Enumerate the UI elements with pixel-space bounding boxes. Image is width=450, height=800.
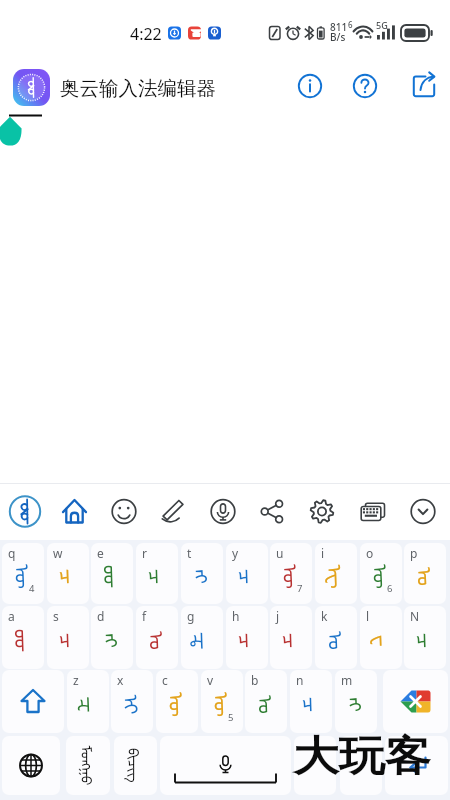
button[interactable]: k (315, 606, 357, 669)
staticText: x (117, 672, 124, 688)
button[interactable]: t (181, 543, 223, 604)
staticText: u (276, 545, 284, 561)
button[interactable]: Collapse (401, 490, 445, 534)
staticText: 4:22 (130, 23, 162, 45)
button[interactable]: u (270, 543, 312, 604)
button[interactable]: Settings (300, 490, 344, 534)
staticText: ᠴ (276, 632, 312, 649)
button[interactable]: Share (410, 72, 438, 100)
staticText: ᠩ (342, 696, 377, 713)
button[interactable]: s (47, 606, 89, 669)
staticText: q (8, 545, 16, 561)
button[interactable]: w (47, 543, 89, 604)
button[interactable]: y (226, 543, 268, 604)
button[interactable]: Space (160, 736, 291, 795)
staticText: ᠴ (142, 568, 178, 585)
button[interactable]: j (270, 606, 312, 669)
button[interactable]: c (156, 670, 198, 733)
staticText: z (73, 672, 79, 688)
button[interactable]: Script (114, 736, 157, 795)
staticText: B/s (330, 30, 346, 44)
button[interactable]: Voice input (201, 490, 245, 534)
staticText: 7 (297, 582, 303, 595)
staticText: ᠥ (367, 563, 402, 590)
staticText: ᠽ (74, 695, 109, 714)
staticText: s (53, 608, 59, 624)
button[interactable]: Info (296, 72, 324, 100)
button[interactable]: z (67, 670, 109, 733)
staticText: ᠼ (187, 631, 223, 650)
staticText: w (53, 545, 63, 561)
staticText: o (366, 545, 374, 561)
staticText: ᠢ (117, 694, 153, 715)
button[interactable]: Enter (385, 736, 448, 795)
staticText: ᠴ (410, 632, 446, 649)
staticText: 6 (348, 19, 353, 30)
button[interactable]: Share (251, 490, 295, 534)
button[interactable]: Handwriting (152, 490, 196, 534)
button[interactable]: q (2, 543, 44, 604)
staticText: m (341, 672, 353, 688)
staticText: ᠴ (296, 696, 332, 713)
button[interactable]: Switch language (2, 736, 60, 795)
button[interactable]: Shift (2, 670, 64, 733)
button[interactable]: o (360, 543, 402, 604)
staticText: 5 (228, 711, 234, 724)
button[interactable]: f (136, 606, 178, 669)
button[interactable]: Emoji (102, 490, 146, 534)
button[interactable]: v (201, 670, 243, 733)
button[interactable]: r (136, 543, 178, 604)
button[interactable]: a (2, 606, 44, 669)
staticText: 4 (29, 582, 35, 595)
staticText: ᠦ (277, 563, 312, 590)
staticText: a (8, 608, 15, 624)
button[interactable]: App icon (13, 69, 50, 106)
button[interactable]: Period (340, 736, 382, 795)
button[interactable]: l (360, 606, 402, 669)
button[interactable]: Keyboard layout (351, 490, 395, 534)
button[interactable]: Help (351, 72, 379, 100)
button[interactable]: x (111, 670, 153, 733)
button[interactable]: b (245, 670, 287, 733)
staticText: ᡂ (8, 628, 44, 653)
staticText: j (276, 608, 280, 624)
staticText: b (251, 672, 259, 688)
staticText: r (142, 545, 147, 561)
button[interactable]: Mongolian (66, 736, 110, 795)
staticText: 5G (376, 19, 388, 31)
staticText: N (410, 608, 420, 624)
staticText: 6 (387, 582, 393, 595)
staticText: ᠥ (208, 691, 243, 718)
staticText: ᠩ (188, 568, 223, 585)
staticText: ᠪᠢᠴᠢᠭ (123, 748, 148, 783)
button[interactable]: d (91, 606, 133, 669)
staticText: l (366, 608, 370, 624)
staticText: ᠧ (321, 564, 357, 589)
button[interactable]: m (335, 670, 377, 733)
button[interactable]: e (91, 543, 133, 604)
staticText: ᠦ (163, 691, 198, 718)
button[interactable]: i (315, 543, 357, 604)
button[interactable]: n (290, 670, 332, 733)
staticText: f (142, 608, 147, 624)
staticText: ᠣ (322, 630, 357, 651)
staticText: ᠴ (232, 632, 268, 649)
staticText: ᠮᠣᠩᠭᠣ (75, 745, 100, 785)
button[interactable]: Home (53, 490, 97, 534)
button[interactable]: Backspace (383, 670, 448, 733)
staticText: k (321, 608, 328, 624)
staticText: ᠥ (9, 563, 44, 590)
button[interactable]: Comma (294, 736, 336, 795)
staticText: ᠣ (411, 566, 446, 587)
button[interactable]: Input method (3, 490, 47, 534)
staticText: i (321, 545, 325, 561)
button[interactable]: g (181, 606, 223, 669)
staticText: c (162, 672, 168, 688)
button[interactable]: h (226, 606, 268, 669)
staticText: t (187, 545, 192, 561)
button[interactable]: p (404, 543, 446, 604)
staticText: v (207, 672, 214, 688)
staticText: n (296, 672, 304, 688)
button[interactable]: N (404, 606, 446, 669)
staticText: ᡂ (97, 564, 133, 589)
